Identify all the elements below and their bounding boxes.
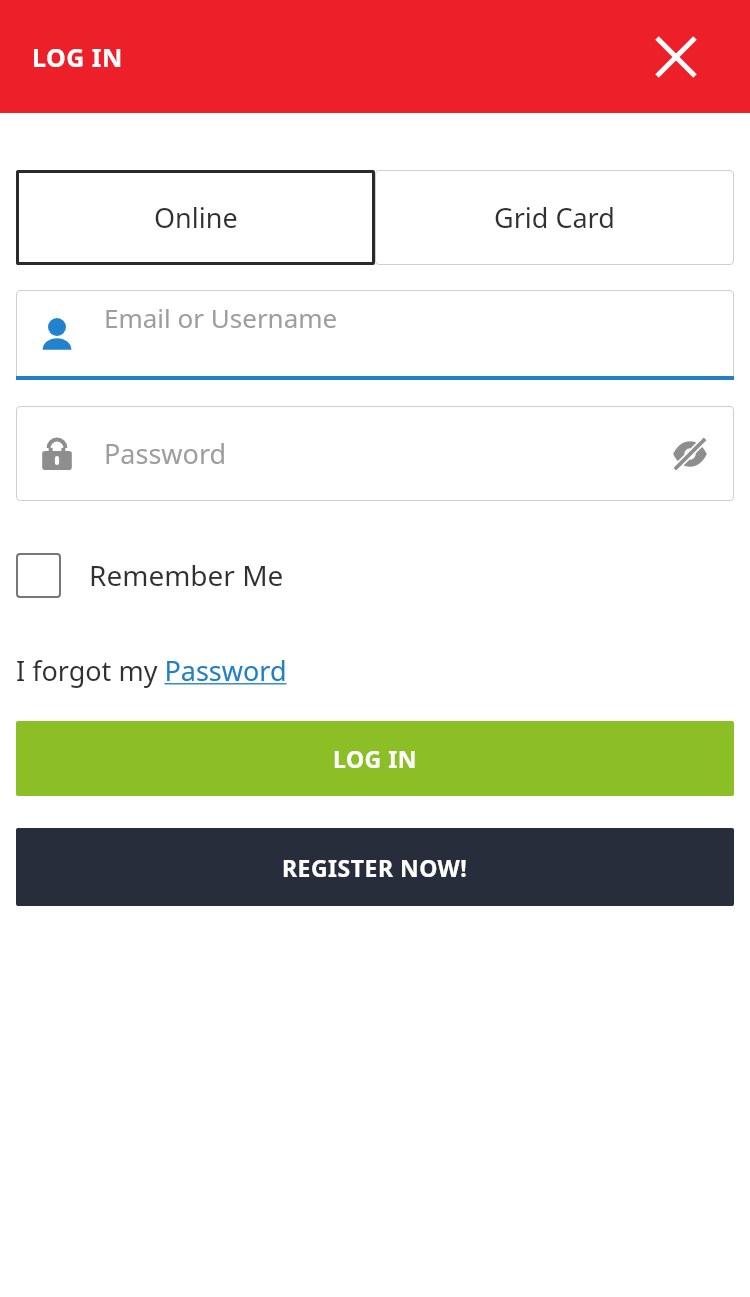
button[interactable]: Close — [652, 33, 700, 81]
staticText: Password — [104, 435, 227, 472]
staticText: I forgot my Password — [16, 652, 287, 689]
staticText: Remember Me — [89, 556, 284, 594]
button[interactable]: Remember Me — [16, 549, 284, 601]
staticText: LOG IN — [32, 40, 123, 74]
button[interactable]: LOG IN — [16, 721, 734, 796]
button[interactable]: Online — [16, 170, 375, 265]
staticText: Grid Card — [494, 199, 615, 236]
button[interactable]: Email or Username — [16, 290, 734, 380]
staticText: Online — [154, 199, 238, 236]
button[interactable]: Show password — [666, 430, 714, 478]
staticText: LOG IN — [333, 743, 417, 774]
staticText: REGISTER NOW! — [282, 852, 468, 883]
button[interactable]: I forgot my Password — [16, 647, 287, 693]
button[interactable]: REGISTER NOW! — [16, 828, 734, 906]
staticText: Email or Username — [104, 300, 338, 335]
button[interactable]: Grid Card — [375, 170, 734, 265]
button[interactable]: Password — [16, 406, 734, 501]
